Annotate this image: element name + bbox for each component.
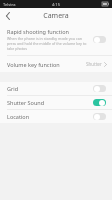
staticText: Telstra (3, 2, 16, 7)
button[interactable]: Off (93, 36, 106, 43)
staticText: Shutter Sound (7, 99, 93, 106)
staticText: When the phone is in standby mode you ca… (7, 36, 90, 51)
button[interactable]: Grid (0, 82, 112, 95)
button[interactable]: Back (0, 8, 16, 24)
staticText: Location (7, 113, 93, 120)
button[interactable]: Volume key function (0, 56, 112, 72)
staticText: Grid (7, 85, 93, 92)
button[interactable]: Off (93, 113, 106, 120)
button[interactable]: Rapid shooting function (0, 24, 112, 55)
staticText: Shutter (86, 61, 102, 67)
staticText: 4:15 (52, 2, 60, 7)
staticText: Rapid shooting function (7, 28, 69, 35)
button[interactable]: On (93, 99, 106, 106)
button[interactable]: Shutter Sound (0, 96, 112, 109)
staticText: Camera (43, 11, 69, 21)
staticText: Volume key function (7, 61, 86, 68)
button[interactable]: Off (93, 85, 106, 92)
button[interactable]: Location (0, 110, 112, 123)
